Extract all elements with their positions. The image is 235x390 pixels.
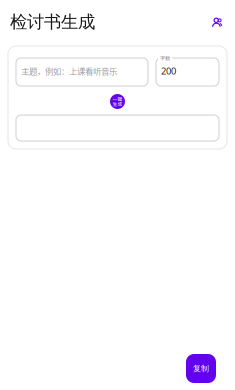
staticText: 一键	[112, 95, 122, 102]
button[interactable]: 一键	[110, 94, 125, 109]
staticText: 主题，例如：上课看听音乐	[21, 65, 117, 77]
staticText: 字数	[160, 54, 170, 62]
button[interactable]: 复制	[186, 354, 216, 383]
staticText: 生成	[112, 100, 122, 107]
button[interactable]: Contacts	[206, 10, 230, 34]
staticText: 检讨书生成	[10, 11, 95, 33]
staticText: 200	[161, 65, 176, 77]
staticText: 复制	[193, 364, 209, 373]
